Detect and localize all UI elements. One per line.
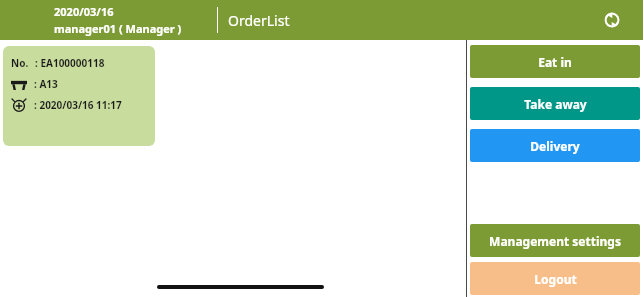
staticText: Eat in: [538, 54, 572, 70]
button[interactable]: Logout: [470, 262, 640, 295]
staticText: : A13: [34, 77, 58, 91]
staticText: Management settings: [489, 233, 621, 249]
staticText: : 2020/03/16 11:17: [34, 98, 122, 112]
button[interactable]: Delivery: [470, 129, 640, 162]
staticText: manager01 ( Manager ): [54, 21, 182, 36]
button[interactable]: Management settings: [470, 224, 640, 257]
staticText: 2020/03/16: [54, 4, 114, 19]
button[interactable]: Take away: [470, 87, 640, 120]
staticText: Delivery: [530, 138, 580, 154]
staticText: OrderList: [228, 11, 290, 30]
staticText: Logout: [534, 271, 577, 287]
button[interactable]: Refresh: [599, 7, 625, 33]
staticText: Take away: [524, 96, 587, 112]
button[interactable]: Eat in: [470, 45, 640, 78]
button[interactable]: No.: [3, 46, 155, 146]
staticText: : EA100000118: [35, 56, 105, 70]
staticText: No.: [11, 56, 29, 70]
